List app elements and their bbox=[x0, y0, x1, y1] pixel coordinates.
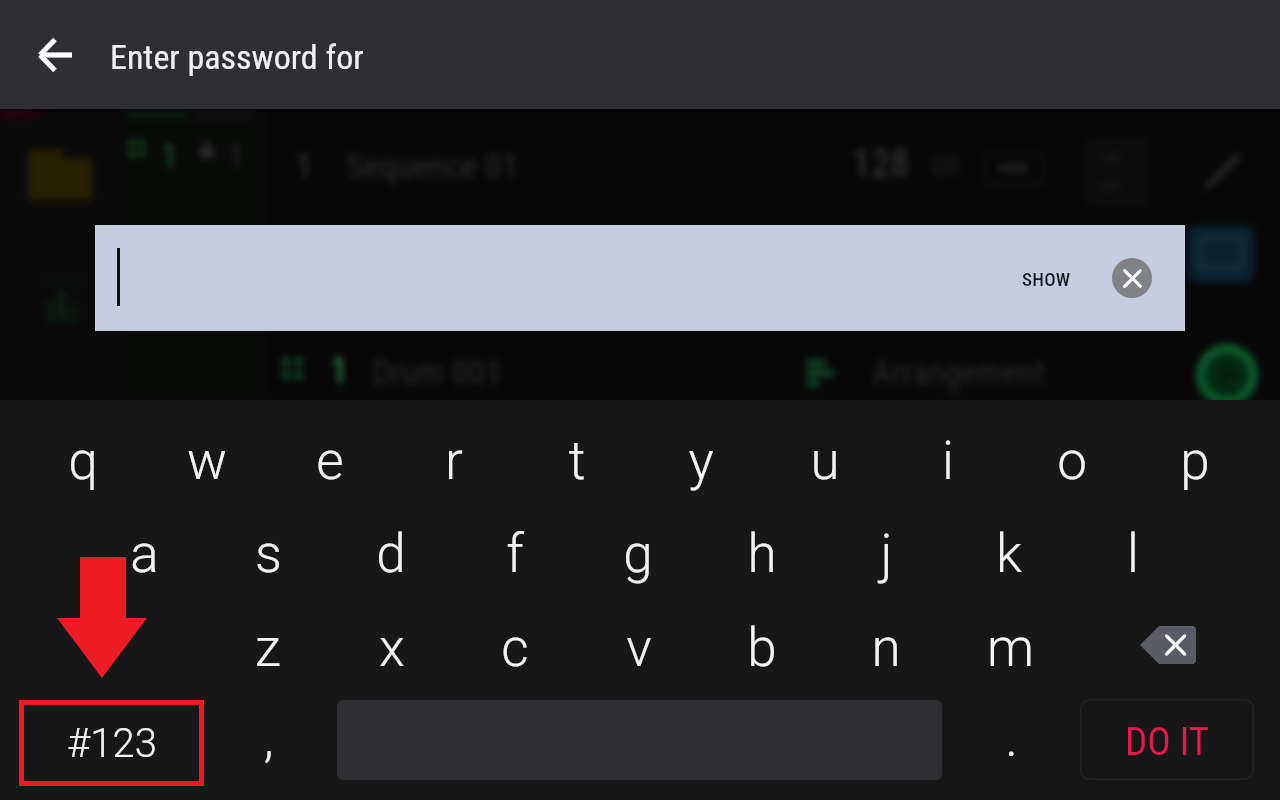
staticText: , bbox=[263, 707, 274, 769]
staticText: z bbox=[255, 617, 281, 679]
staticText: r bbox=[445, 430, 463, 492]
button[interactable]: Back bbox=[25, 23, 89, 87]
staticText: y bbox=[688, 430, 714, 492]
staticText: m bbox=[987, 617, 1034, 679]
button[interactable]: SHOW bbox=[95, 225, 1185, 331]
staticText: b bbox=[747, 617, 777, 679]
staticText: c bbox=[501, 617, 529, 679]
button[interactable]: z bbox=[210, 603, 326, 693]
button[interactable]: f bbox=[457, 509, 573, 599]
staticText: s bbox=[255, 523, 282, 585]
staticText: v bbox=[626, 617, 652, 679]
staticText: f bbox=[506, 523, 524, 585]
staticText: i bbox=[942, 430, 954, 492]
staticText: Drum 001 bbox=[372, 352, 502, 392]
button[interactable]: b bbox=[704, 603, 820, 693]
staticText: #123 bbox=[67, 720, 157, 767]
staticText: 1 bbox=[296, 146, 313, 185]
staticText: DO IT bbox=[1125, 719, 1210, 765]
button[interactable]: a bbox=[86, 509, 202, 599]
staticText: Enter password for bbox=[110, 37, 364, 77]
button[interactable]: q bbox=[25, 416, 141, 506]
button[interactable]: j bbox=[828, 509, 944, 599]
button[interactable]: v bbox=[581, 603, 697, 693]
button[interactable]: k bbox=[951, 509, 1067, 599]
button[interactable]: n bbox=[828, 603, 944, 693]
button[interactable]: y bbox=[643, 416, 759, 506]
button[interactable]: Clear bbox=[1112, 258, 1152, 298]
staticText: Arrangement bbox=[872, 352, 1046, 392]
staticText: o bbox=[1057, 430, 1087, 492]
staticText: l bbox=[1127, 523, 1139, 585]
staticText: a bbox=[130, 523, 159, 585]
staticText: h bbox=[747, 523, 777, 585]
button[interactable]: . bbox=[953, 693, 1069, 783]
button[interactable]: t bbox=[519, 416, 635, 506]
button[interactable]: #123 bbox=[19, 700, 204, 786]
button[interactable]: SHOW bbox=[1022, 268, 1071, 290]
staticText: n bbox=[871, 617, 901, 679]
button[interactable]: h bbox=[704, 509, 820, 599]
button[interactable]: r bbox=[396, 416, 512, 506]
button[interactable]: DO IT bbox=[1080, 699, 1254, 780]
button[interactable]: c bbox=[457, 603, 573, 693]
button[interactable]: g bbox=[580, 509, 696, 599]
button[interactable]: x bbox=[334, 603, 450, 693]
staticText: 1 bbox=[330, 350, 348, 392]
staticText: e bbox=[316, 430, 344, 492]
button[interactable]: i bbox=[890, 416, 1006, 506]
staticText: p bbox=[1180, 430, 1210, 492]
button[interactable]: w bbox=[149, 416, 265, 506]
button[interactable]: p bbox=[1137, 416, 1253, 506]
staticText: 1 bbox=[228, 136, 244, 174]
button[interactable]: u bbox=[767, 416, 883, 506]
button[interactable]: m bbox=[952, 603, 1068, 693]
staticText: t bbox=[568, 430, 586, 492]
button[interactable]: , bbox=[210, 693, 326, 783]
staticText: . bbox=[1005, 707, 1018, 769]
staticText: 1 bbox=[161, 136, 178, 175]
button[interactable]: e bbox=[272, 416, 388, 506]
button[interactable]: o bbox=[1014, 416, 1130, 506]
staticText: g bbox=[623, 523, 653, 585]
staticText: Sequence 01 bbox=[346, 146, 519, 186]
staticText: d bbox=[376, 523, 406, 585]
staticText: u bbox=[810, 430, 840, 492]
button[interactable]: d bbox=[333, 509, 449, 599]
staticText: x bbox=[379, 617, 405, 679]
staticText: w bbox=[187, 430, 227, 492]
button[interactable]: s bbox=[210, 509, 326, 599]
button[interactable]: l bbox=[1075, 509, 1191, 599]
staticText: j bbox=[880, 523, 893, 585]
staticText: q bbox=[68, 430, 98, 492]
button[interactable]: Backspace bbox=[1140, 626, 1196, 664]
staticText: k bbox=[996, 523, 1022, 585]
staticText: 128 bbox=[852, 142, 909, 187]
